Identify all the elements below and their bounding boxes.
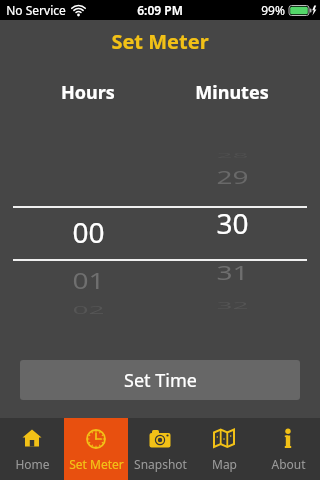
staticText: 29 (216, 165, 249, 189)
staticText: Set Meter (69, 456, 124, 472)
button[interactable]: Set Meter (64, 418, 128, 480)
staticText: About (271, 456, 306, 472)
button[interactable]: Set Time (20, 360, 300, 400)
button[interactable]: About (256, 418, 320, 480)
button[interactable]: Home (0, 418, 64, 480)
button[interactable]: Snapshot (128, 418, 192, 480)
staticText: Hours (61, 80, 115, 104)
staticText: 01 (72, 265, 105, 295)
staticText: 6:09 PM (137, 2, 183, 18)
staticText: 00 (72, 213, 105, 251)
staticText: 99% (261, 2, 285, 18)
staticText: Minutes (195, 80, 269, 104)
staticText: 02 (72, 303, 105, 317)
staticText: Set Meter (111, 28, 209, 55)
staticText: Home (15, 456, 50, 472)
staticText: Set Time (124, 368, 197, 393)
staticText: 32 (216, 300, 249, 312)
staticText: 30 (216, 204, 249, 242)
button[interactable]: Map (192, 418, 256, 480)
staticText: Snapshot (134, 456, 187, 472)
staticText: 31 (216, 259, 249, 285)
staticText: No Service (6, 2, 66, 18)
staticText: Map (212, 456, 237, 472)
